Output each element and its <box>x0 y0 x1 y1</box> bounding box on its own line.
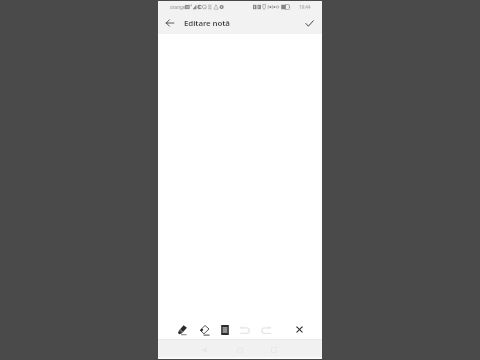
button[interactable]: Home <box>231 340 249 360</box>
button[interactable]: Undo <box>236 320 254 339</box>
button[interactable]: Back <box>195 340 213 360</box>
button[interactable]: Redo <box>257 320 275 339</box>
staticText: 19:44 <box>299 4 311 10</box>
button[interactable]: Back <box>161 14 179 32</box>
staticText: orange <box>170 4 186 10</box>
button[interactable]: Recent apps <box>265 340 283 360</box>
button[interactable]: Close <box>290 320 308 339</box>
button[interactable]: Pen <box>173 320 191 339</box>
button[interactable]: Eraser <box>195 320 213 339</box>
staticText: Editare notă <box>184 18 230 29</box>
button[interactable]: Save note <box>300 14 318 32</box>
button[interactable]: Text note <box>216 320 234 339</box>
